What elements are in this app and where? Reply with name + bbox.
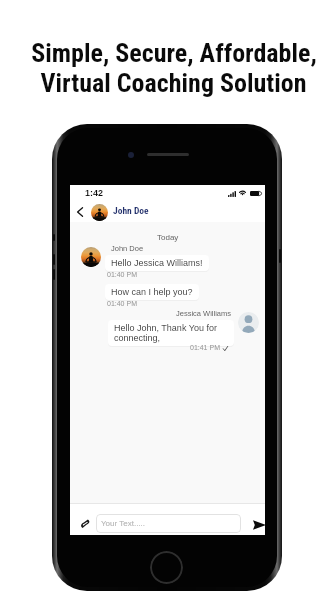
staticText: John Doe [113, 205, 149, 216]
staticText: Virtual Coaching Solution [40, 68, 307, 98]
button[interactable]: Send [251, 517, 267, 533]
staticText: Today [157, 233, 179, 242]
staticText: Jessica Williams [176, 309, 232, 317]
staticText: John Doe [111, 244, 144, 252]
staticText: How can I help you? [111, 287, 193, 297]
button[interactable]: Attach file [77, 516, 92, 531]
staticText: Your Text..... [101, 519, 146, 528]
staticText: 1:42 [85, 188, 104, 198]
staticText: Hello Jessica Williams! [111, 258, 203, 268]
button[interactable]: Back [73, 205, 86, 218]
staticText: Hello John, Thank You for connecting, [114, 323, 228, 343]
staticText: Simple, Secure, Affordable, [31, 38, 317, 68]
staticText: 01:41 PM [190, 344, 220, 352]
staticText: 01:40 PM [107, 300, 137, 308]
button[interactable]: Your Text..... [96, 514, 241, 533]
staticText: 01:40 PM [107, 271, 137, 279]
